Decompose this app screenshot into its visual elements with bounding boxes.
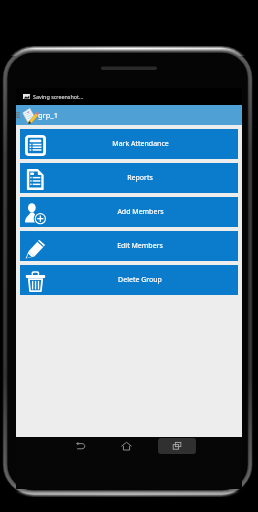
- staticText: Edit Members: [117, 241, 163, 251]
- button[interactable]: Back: [72, 437, 90, 455]
- button[interactable]: Add Members: [20, 197, 238, 227]
- staticText: grp_1: [38, 110, 58, 120]
- button[interactable]: Edit Members: [20, 231, 238, 261]
- staticText: Add Members: [117, 207, 164, 217]
- button[interactable]: Delete Group: [20, 265, 238, 295]
- button[interactable]: Mark Attendance: [20, 129, 238, 159]
- staticText: Saving screenshot…: [33, 93, 84, 100]
- staticText: Reports: [127, 173, 153, 183]
- button[interactable]: Home: [117, 437, 135, 455]
- button[interactable]: Reports: [20, 163, 238, 193]
- button[interactable]: grp_1: [16, 105, 242, 125]
- staticText: Delete Group: [118, 275, 162, 285]
- staticText: Mark Attendance: [112, 139, 169, 149]
- button[interactable]: Recent apps: [158, 438, 196, 454]
